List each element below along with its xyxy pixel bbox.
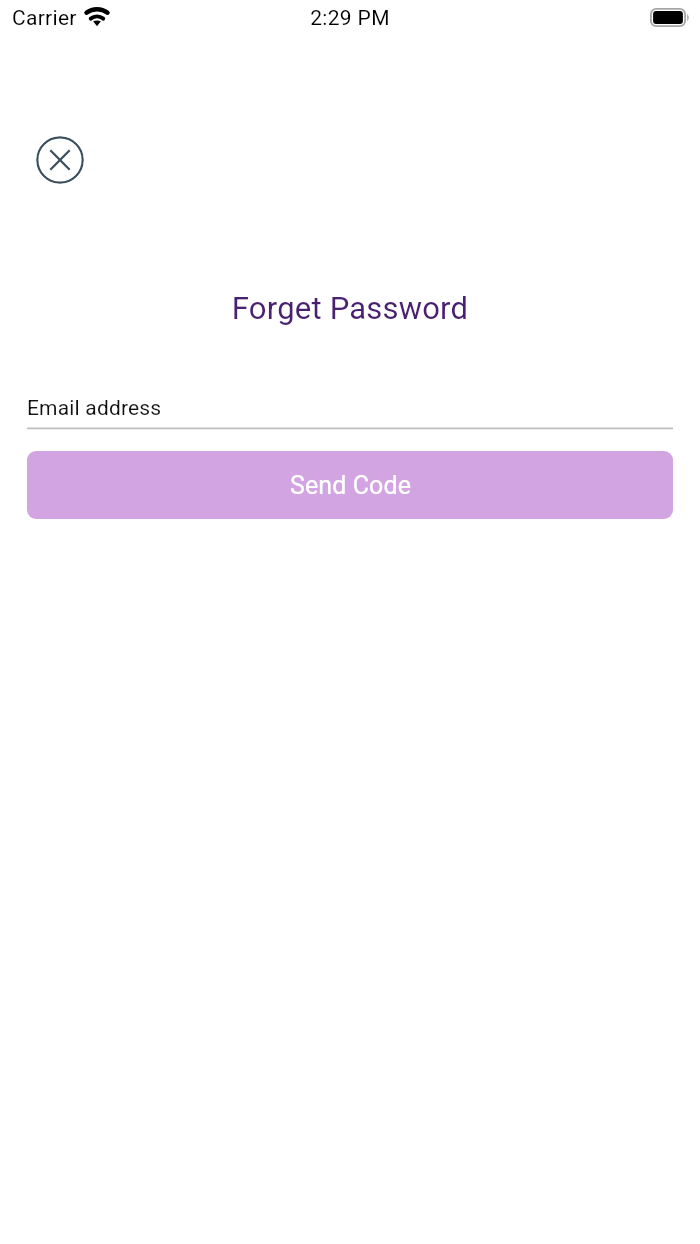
button[interactable]: Send Code — [27, 451, 673, 519]
staticText: Send Code — [290, 471, 411, 500]
button[interactable]: Close — [36, 136, 84, 184]
staticText: Forget Password — [0, 290, 700, 326]
staticText: Email address — [27, 396, 162, 421]
staticText: 2:29 PM — [0, 6, 700, 31]
staticText: Carrier — [12, 6, 77, 31]
button[interactable]: Email address — [27, 390, 673, 431]
